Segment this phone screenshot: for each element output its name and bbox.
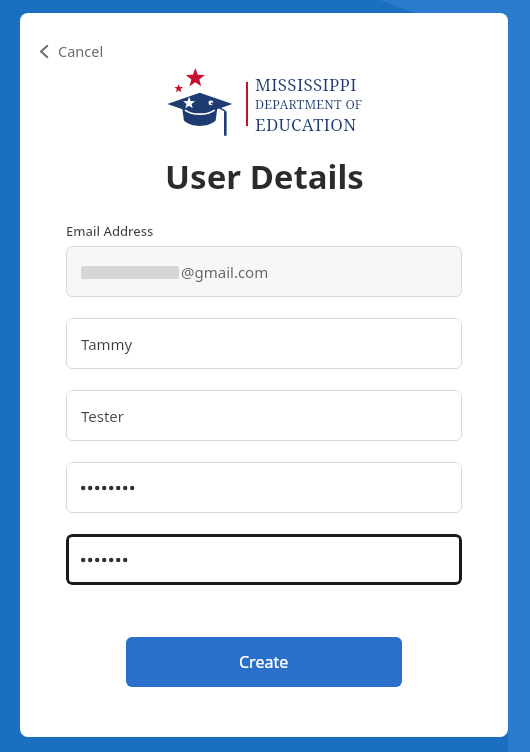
button[interactable] xyxy=(66,462,462,513)
staticText: MISSISSIPPI xyxy=(255,73,357,96)
button[interactable]: @gmail.com xyxy=(66,246,462,297)
staticText: DEPARTMENT OF xyxy=(255,96,363,113)
button[interactable]: Tester xyxy=(66,390,462,441)
staticText: EDUCATION xyxy=(255,113,357,136)
staticText: User Details xyxy=(165,154,364,199)
button[interactable] xyxy=(66,534,462,585)
button[interactable]: Tammy xyxy=(66,318,462,369)
staticText: Create xyxy=(239,651,289,673)
button[interactable]: Create xyxy=(126,637,402,687)
staticText: Tammy xyxy=(81,334,133,354)
button[interactable]: Cancel xyxy=(34,38,108,64)
staticText: Cancel xyxy=(58,41,104,61)
staticText: @gmail.com xyxy=(181,262,269,282)
staticText: Tester xyxy=(81,406,125,426)
staticText: Email Address xyxy=(66,222,154,240)
